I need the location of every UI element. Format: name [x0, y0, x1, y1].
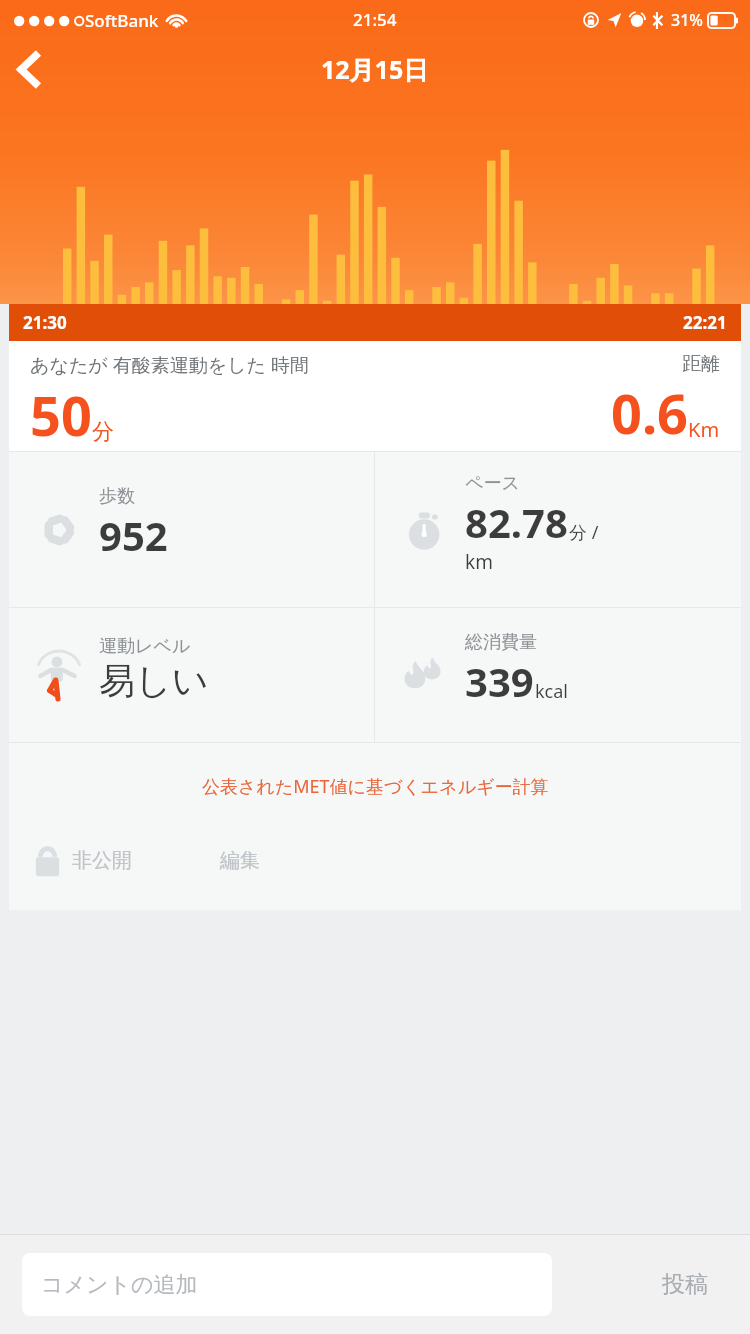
- staticText: km: [465, 549, 493, 575]
- staticText: 距離: [682, 352, 720, 376]
- staticText: 歩数: [99, 485, 135, 508]
- staticText: SoftBank: [85, 9, 159, 32]
- button[interactable]: 運動レベル: [9, 608, 374, 742]
- staticText: kcal: [535, 679, 568, 704]
- staticText: 339: [465, 654, 534, 708]
- staticText: 12月15日: [321, 52, 429, 86]
- button[interactable]: 非公開: [33, 844, 140, 877]
- staticText: 21:54: [353, 8, 397, 31]
- staticText: あなたが 有酸素運動をした 時間: [30, 352, 309, 378]
- staticText: 分 /: [569, 520, 599, 545]
- staticText: 投稿: [662, 1270, 708, 1299]
- staticText: 運動レベル: [99, 635, 191, 658]
- staticText: 総消費量: [465, 631, 537, 654]
- staticText: 分: [92, 418, 114, 446]
- staticText: 22:21: [683, 311, 727, 334]
- button[interactable]: 編集: [220, 848, 260, 873]
- staticText: 82.78: [465, 495, 568, 549]
- staticText: 952: [99, 508, 168, 562]
- button[interactable]: コメントの追加: [22, 1253, 552, 1316]
- staticText: 31%: [671, 9, 703, 31]
- button[interactable]: ペース: [375, 452, 741, 607]
- button[interactable]: 投稿: [640, 1253, 730, 1316]
- staticText: 非公開: [72, 848, 132, 873]
- button[interactable]: Back: [0, 40, 60, 98]
- staticText: 0.6: [611, 376, 688, 450]
- staticText: コメントの追加: [41, 1271, 198, 1299]
- staticText: 易しい: [99, 658, 209, 703]
- button[interactable]: 公表されたMET値に基づくエネルギー計算: [202, 774, 549, 799]
- staticText: Km: [688, 416, 720, 443]
- staticText: ペース: [465, 472, 520, 495]
- button[interactable]: 歩数: [9, 452, 374, 607]
- button[interactable]: 総消費量: [375, 608, 741, 742]
- staticText: 50: [30, 378, 92, 451]
- staticText: 21:30: [23, 311, 67, 334]
